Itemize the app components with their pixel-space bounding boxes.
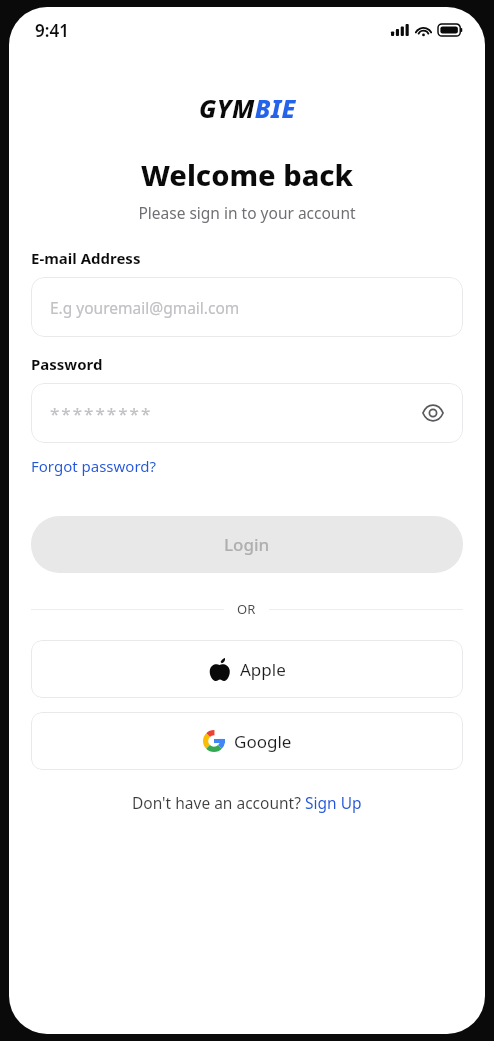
button[interactable]: Show password — [419, 399, 447, 427]
staticText: Login — [224, 533, 270, 556]
staticText: Apple — [240, 658, 286, 681]
staticText: E.g youremail@gmail.com — [50, 297, 240, 318]
staticText: Password — [31, 354, 103, 374]
staticText: Google — [234, 730, 292, 753]
button[interactable]: Google — [31, 712, 463, 770]
button[interactable]: Login — [31, 516, 463, 573]
staticText: Welcome back — [9, 155, 485, 194]
staticText: Sign Up — [305, 792, 362, 813]
staticText: Forgot password? — [31, 456, 157, 476]
button[interactable]: ********* — [31, 383, 463, 443]
staticText: 9:41 — [35, 19, 69, 42]
staticText: ********* — [50, 402, 153, 425]
button[interactable]: Apple — [31, 640, 463, 698]
staticText: Don't have an account? — [132, 792, 305, 813]
staticText: OR — [237, 600, 256, 618]
button[interactable]: E.g youremail@gmail.com — [31, 277, 463, 337]
staticText: GYMBIE — [199, 91, 296, 125]
staticText: E-mail Address — [31, 248, 141, 268]
button[interactable]: Sign Up — [305, 792, 362, 813]
button[interactable]: Forgot password? — [31, 456, 157, 476]
staticText: Please sign in to your account — [9, 202, 485, 223]
